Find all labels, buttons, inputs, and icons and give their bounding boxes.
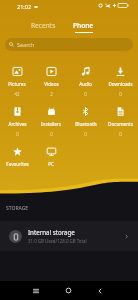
- button[interactable]: Back: [90, 281, 110, 300]
- staticText: Search: [17, 41, 35, 48]
- staticText: Installers: [41, 121, 61, 127]
- staticText: 2: [50, 91, 53, 97]
- button[interactable]: Audio: [68, 62, 103, 97]
- staticText: PC: [48, 161, 54, 167]
- button[interactable]: PC: [34, 142, 68, 167]
- staticText: 0: [84, 131, 87, 137]
- staticText: Pictures: [8, 81, 26, 87]
- staticText: 0: [16, 131, 19, 137]
- staticText: Audio: [79, 81, 92, 87]
- staticText: STORAGE: [6, 205, 29, 212]
- button[interactable]: Recents: [26, 281, 46, 300]
- staticText: Favourites: [6, 161, 29, 167]
- button[interactable]: Bluetooth: [68, 102, 103, 137]
- staticText: 21:02: [17, 3, 32, 10]
- button[interactable]: Favourites: [0, 142, 34, 167]
- button[interactable]: Internal storage: [0, 221, 138, 251]
- button[interactable]: Pictures: [0, 62, 34, 97]
- button[interactable]: Archives: [0, 102, 34, 137]
- staticText: Videos: [44, 81, 59, 87]
- staticText: 0: [84, 91, 87, 97]
- staticText: 0: [119, 91, 122, 97]
- button[interactable]: Downloads: [103, 62, 138, 97]
- button[interactable]: Home: [58, 281, 78, 300]
- button[interactable]: Recents: [29, 19, 58, 32]
- staticText: Phone: [73, 21, 94, 30]
- staticText: 31.0 GB Used/128.0 GB Total: [28, 238, 87, 244]
- staticText: Archives: [8, 121, 27, 127]
- button[interactable]: Installers: [34, 102, 68, 137]
- staticText: Bluetooth: [75, 121, 97, 127]
- staticText: 0: [50, 131, 53, 137]
- staticText: Documents: [108, 121, 133, 127]
- staticText: Internal storage: [28, 228, 75, 236]
- button[interactable]: Phone: [71, 19, 96, 35]
- button[interactable]: Videos: [34, 62, 68, 97]
- button[interactable]: Search: [5, 38, 133, 51]
- staticText: Recents: [31, 21, 56, 30]
- button[interactable]: Documents: [103, 102, 138, 137]
- staticText: 42: [14, 91, 20, 97]
- staticText: Downloads: [108, 81, 133, 87]
- staticText: 0: [119, 131, 122, 137]
